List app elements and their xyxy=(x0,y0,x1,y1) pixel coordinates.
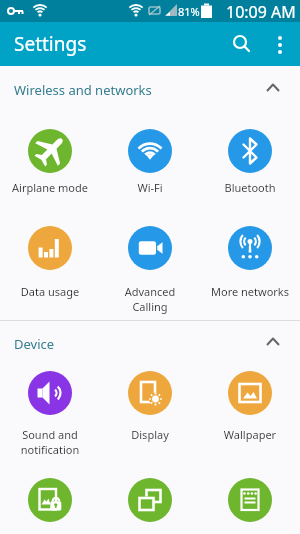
button[interactable]: More networks xyxy=(204,226,296,299)
staticText: Settings xyxy=(14,31,87,57)
button[interactable]: Display xyxy=(104,371,196,442)
staticText: Sound and xyxy=(4,427,96,442)
button[interactable]: Device xyxy=(0,321,300,365)
button[interactable] xyxy=(262,22,300,66)
button[interactable]: Sound and xyxy=(4,371,96,457)
staticText: Display xyxy=(104,427,196,442)
button[interactable]: Wi-Fi xyxy=(104,129,196,195)
staticText: notification xyxy=(4,442,96,457)
button[interactable]: Wireless and networks xyxy=(0,66,300,104)
staticText: Calling xyxy=(104,299,196,314)
staticText: Airplane mode xyxy=(4,180,96,195)
staticText: Device xyxy=(14,335,55,353)
button[interactable]: Wallpaper xyxy=(204,371,296,442)
button[interactable] xyxy=(222,22,260,66)
button[interactable]: Bluetooth xyxy=(204,129,296,195)
staticText: Wallpaper xyxy=(204,427,296,442)
staticText: More networks xyxy=(204,284,296,299)
staticText: Wireless and networks xyxy=(14,81,152,99)
button[interactable]: Advanced xyxy=(104,226,196,314)
staticText: 10:09 AM xyxy=(226,1,296,23)
staticText: Advanced xyxy=(104,284,196,299)
button[interactable] xyxy=(4,478,96,532)
staticText: Data usage xyxy=(4,284,96,299)
button[interactable] xyxy=(204,478,296,532)
staticText: Bluetooth xyxy=(204,180,296,195)
staticText: 81% xyxy=(178,4,200,19)
button[interactable]: Airplane mode xyxy=(4,129,96,195)
staticText: Wi-Fi xyxy=(104,180,196,195)
button[interactable] xyxy=(104,478,196,532)
button[interactable]: Data usage xyxy=(4,226,96,299)
